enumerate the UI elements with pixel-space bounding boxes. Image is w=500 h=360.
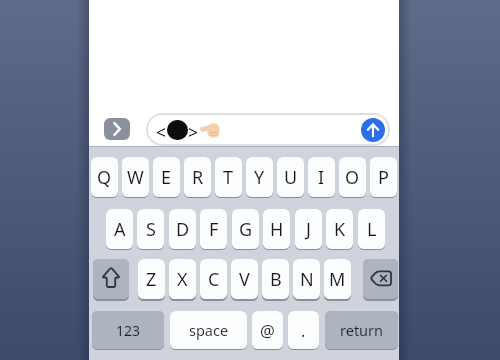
staticText: Q [97,165,112,190]
button[interactable]: Z [138,259,165,299]
staticText: @ [260,319,275,341]
staticText: N [300,267,314,292]
staticText: O [345,165,360,190]
button[interactable]: J [295,209,322,249]
staticText: P [378,165,389,190]
staticText: E [161,165,172,190]
staticText: M [329,267,346,292]
staticText: H [270,217,284,242]
staticText: R [192,165,204,190]
button[interactable]: return [325,311,398,349]
button[interactable]: D [169,209,196,249]
button[interactable]: G [232,209,259,249]
staticText: return [340,320,384,340]
staticText: S [146,217,156,242]
button[interactable]: X [169,259,196,299]
staticText: L [367,217,377,242]
staticText: X [177,267,188,292]
button[interactable]: 123 [92,311,164,349]
staticText: D [176,217,190,242]
staticText: V [239,267,250,292]
staticText: C [208,267,220,292]
button[interactable]: U [277,157,304,197]
button[interactable]: N [293,259,320,299]
staticText: Z [146,267,157,292]
button[interactable] [361,118,385,142]
button[interactable]: P [370,157,397,197]
staticText: U [284,165,298,190]
button[interactable]: B [262,259,289,299]
button[interactable]: Y [246,157,273,197]
button[interactable]: S [137,209,164,249]
staticText: space [189,320,229,340]
button[interactable]: L [358,209,385,249]
staticText: > [188,120,199,141]
button[interactable]: K [326,209,353,249]
button[interactable]: A [106,209,133,249]
button[interactable]: F [200,209,227,249]
button[interactable]: Q [91,157,118,197]
button[interactable]: T [215,157,242,197]
staticText: I [318,165,325,190]
button[interactable] [146,113,390,146]
staticText: J [306,217,311,242]
button[interactable]: V [231,259,258,299]
staticText: 123 [116,321,141,340]
staticText: A [114,217,126,242]
button[interactable] [93,259,129,299]
button[interactable]: R [184,157,211,197]
button[interactable]: O [339,157,366,197]
staticText: F [209,217,219,242]
button[interactable]: H [263,209,290,249]
button[interactable]: W [122,157,149,197]
button[interactable] [363,259,398,299]
staticText: < [156,120,167,141]
button[interactable] [104,118,130,140]
staticText: G [239,217,253,242]
button[interactable]: M [324,259,351,299]
button[interactable]: @ [252,311,283,349]
button[interactable]: . [288,311,319,349]
button[interactable]: E [153,157,180,197]
button[interactable]: I [308,157,335,197]
staticText: W [127,165,144,190]
button[interactable]: space [170,311,247,349]
staticText: Y [254,165,265,190]
staticText: T [223,165,234,190]
staticText: B [270,267,282,292]
button[interactable]: C [200,259,227,299]
staticText: K [334,217,346,242]
staticText: . [301,319,306,341]
